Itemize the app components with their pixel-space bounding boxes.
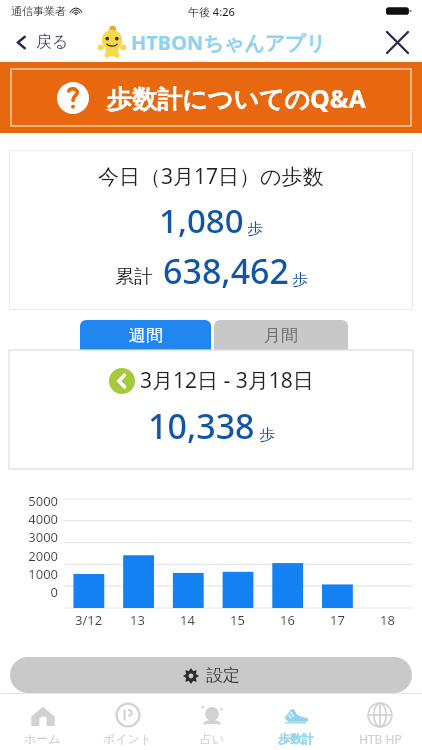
staticText: 歩数計についてのQ&A [107, 81, 366, 115]
staticText: 設定 [206, 665, 240, 686]
staticText: 通信事業者 [11, 4, 66, 18]
staticText: 18 [380, 611, 395, 629]
staticText: ポイント [103, 731, 153, 746]
staticText: 戻る [36, 32, 69, 52]
staticText: 歩 [247, 219, 263, 239]
staticText: 17 [330, 611, 345, 629]
button[interactable]: 戻る [0, 26, 83, 58]
staticText: 638,462 [163, 248, 289, 294]
staticText: 13 [130, 611, 145, 629]
button[interactable]: ホーム [0, 694, 85, 750]
button[interactable]: ポイント [85, 694, 170, 750]
staticText: 占い [200, 731, 225, 746]
staticText: 累計 [115, 265, 153, 289]
button[interactable]: HTB HP [338, 694, 422, 750]
staticText: 1000 [28, 565, 58, 583]
button[interactable]: Close [373, 24, 422, 61]
staticText: 0 [50, 583, 58, 601]
staticText: ホーム [24, 731, 61, 746]
staticText: 3/12 [75, 611, 103, 629]
staticText: 3000 [28, 528, 58, 546]
staticText: 歩 [259, 425, 275, 445]
staticText: 歩数計 [278, 731, 314, 746]
staticText: 4000 [28, 510, 58, 528]
button[interactable]: 設定 [10, 657, 412, 693]
staticText: HTBONちゃんアプリ [131, 29, 327, 56]
button[interactable]: Previous week [109, 368, 135, 394]
staticText: 歩 [292, 270, 308, 290]
staticText: HTB HP [359, 731, 402, 747]
staticText: 2000 [28, 547, 58, 565]
button[interactable]: 歩数計 [254, 694, 338, 750]
button[interactable]: 月間 [214, 320, 348, 350]
staticText: 今日（3月17日）の歩数 [98, 162, 324, 191]
button[interactable]: 歩数計についてのQ&A [0, 62, 422, 133]
staticText: 1,080 [159, 198, 244, 243]
staticText: 午後 4:26 [188, 4, 235, 19]
button[interactable]: 占い [170, 694, 254, 750]
staticText: 月間 [264, 325, 298, 346]
staticText: 14 [180, 611, 195, 629]
staticText: 10,338 [148, 403, 255, 449]
staticText: 3月12日 - 3月18日 [140, 366, 314, 395]
button[interactable]: 週間 [80, 320, 211, 350]
staticText: 5000 [28, 492, 58, 510]
staticText: 15 [230, 611, 245, 629]
staticText: 週間 [129, 325, 163, 346]
staticText: 16 [280, 611, 295, 629]
